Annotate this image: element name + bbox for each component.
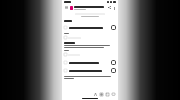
button[interactable]: Comment <box>64 59 116 66</box>
button[interactable]: Menu <box>64 5 69 10</box>
button[interactable]: Insert image <box>105 92 110 97</box>
button[interactable] <box>64 52 116 57</box>
button[interactable]: Comment <box>64 24 116 31</box>
button[interactable] <box>64 35 116 40</box>
button[interactable]: Comment <box>111 25 116 30</box>
button[interactable]: More options <box>112 6 116 10</box>
button[interactable]: Comment <box>111 68 116 73</box>
button[interactable]: Share <box>107 5 112 10</box>
button[interactable]: Format <box>93 92 98 97</box>
button[interactable]: Insert table <box>99 92 104 97</box>
button[interactable]: Add comment <box>111 92 116 97</box>
button[interactable]: Comment <box>111 60 116 65</box>
button[interactable]: Comment <box>64 67 116 74</box>
